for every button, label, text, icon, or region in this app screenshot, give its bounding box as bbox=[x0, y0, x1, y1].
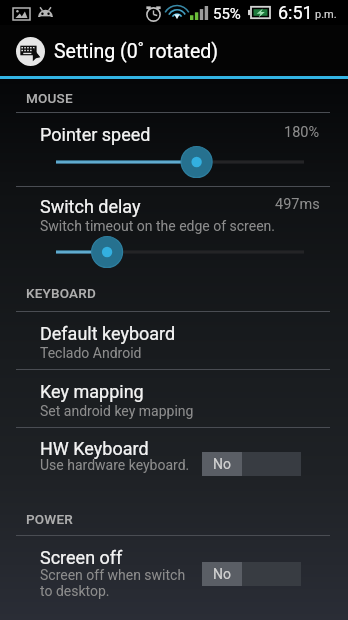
staticText: Teclado Android bbox=[40, 345, 142, 361]
button[interactable] bbox=[0, 312, 348, 369]
button[interactable] bbox=[0, 370, 348, 427]
button[interactable]: Toggle HW Keyboard bbox=[202, 452, 301, 476]
staticText: No bbox=[213, 456, 231, 472]
button[interactable] bbox=[0, 113, 348, 186]
staticText: POWER bbox=[26, 511, 73, 527]
staticText: Setting (0˚ rotated) bbox=[54, 40, 219, 63]
staticText: p.m. bbox=[315, 8, 337, 21]
staticText: 6:51 bbox=[278, 2, 313, 23]
staticText: Default keyboard bbox=[40, 323, 176, 344]
staticText: Screen off bbox=[40, 547, 123, 568]
staticText: MOUSE bbox=[26, 90, 73, 106]
staticText: 55% bbox=[213, 5, 241, 23]
button[interactable] bbox=[0, 187, 348, 280]
button[interactable] bbox=[0, 536, 348, 620]
staticText: Set android key mapping bbox=[40, 403, 194, 419]
staticText: No bbox=[213, 566, 231, 582]
staticText: Switch delay bbox=[40, 196, 141, 217]
button[interactable]: App icon bbox=[16, 37, 45, 66]
staticText: Key mapping bbox=[40, 381, 144, 402]
staticText: HW Keyboard bbox=[40, 438, 149, 459]
staticText: 497ms bbox=[275, 196, 320, 213]
staticText: Pointer speed bbox=[40, 124, 151, 145]
staticText: KEYBOARD bbox=[26, 285, 96, 301]
button[interactable] bbox=[0, 428, 348, 505]
staticText: 180% bbox=[284, 124, 320, 141]
button[interactable]: Toggle Screen off bbox=[202, 562, 301, 586]
staticText: Screen off when switch to desktop. bbox=[40, 567, 192, 599]
staticText: Switch timeout on the edge of screen. bbox=[40, 218, 275, 234]
staticText: Use hardware keyboard. bbox=[40, 457, 190, 473]
